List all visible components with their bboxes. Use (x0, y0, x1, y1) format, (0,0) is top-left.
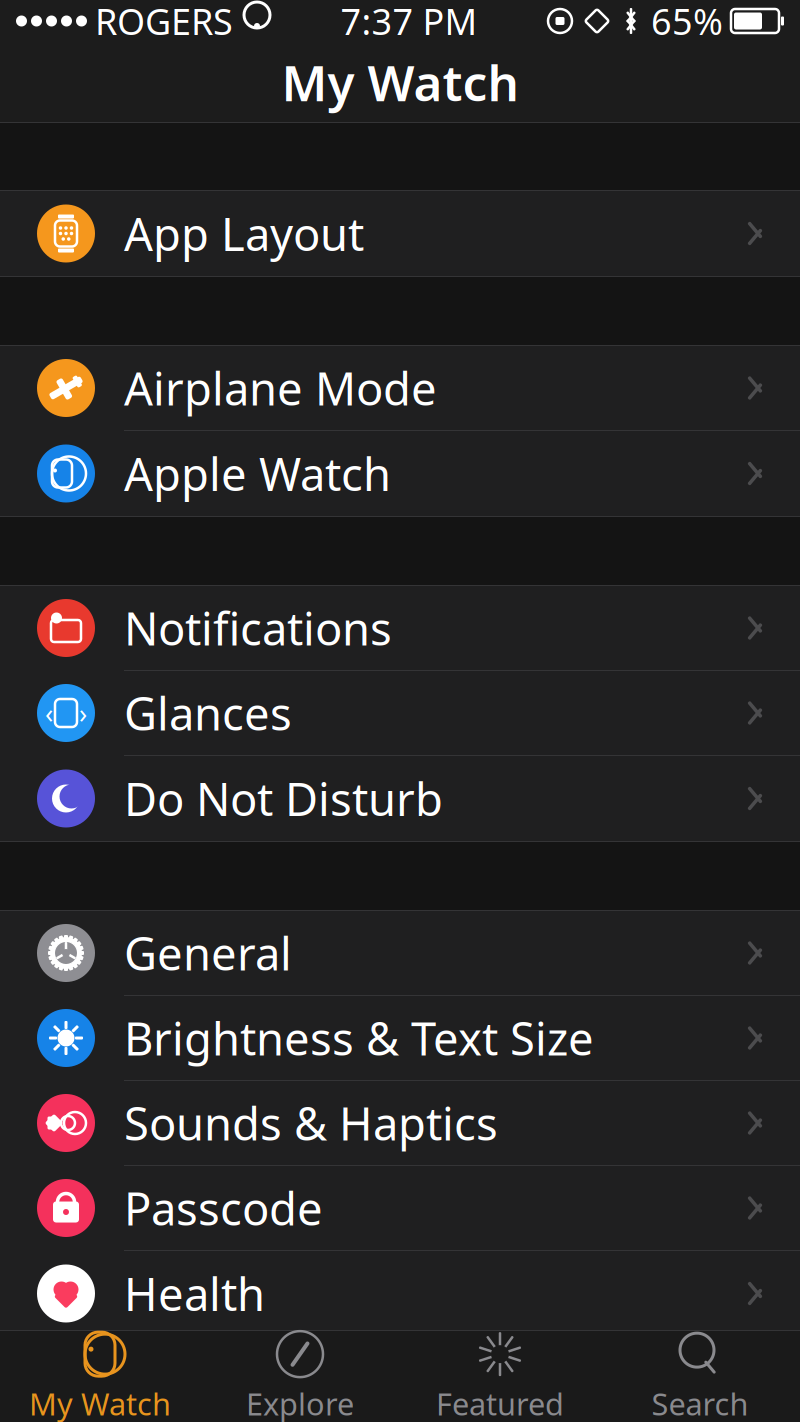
staticText: Passcode (124, 1178, 323, 1238)
staticText: Explore (246, 1383, 354, 1422)
staticText: Notifications (124, 598, 392, 658)
staticText: Featured (436, 1383, 564, 1422)
staticText: ROGERS (95, 0, 233, 45)
staticText: App Layout (124, 203, 364, 264)
button[interactable]: Brightness & Text Size (0, 996, 800, 1081)
button[interactable]: ‹ (0, 671, 800, 756)
staticText: 7:37 PM (340, 0, 477, 45)
button[interactable]: Featured (400, 1331, 600, 1422)
staticText: ‹ (45, 695, 53, 731)
staticText: My Watch (281, 49, 518, 115)
staticText: Health (124, 1263, 265, 1324)
staticText: My Watch (29, 1383, 171, 1422)
staticText: 65% (651, 0, 723, 45)
staticText: Search (651, 1383, 748, 1422)
button[interactable]: Notifications (0, 586, 800, 671)
staticText: Airplane Mode (124, 358, 437, 418)
button[interactable]: Passcode (0, 1166, 800, 1251)
button[interactable]: Search (600, 1331, 800, 1422)
button[interactable]: Health (0, 1251, 800, 1336)
staticText: Brightness & Text Size (124, 1008, 594, 1068)
button[interactable]: Explore (200, 1331, 400, 1422)
staticText: Do Not Disturb (124, 768, 443, 829)
button[interactable]: General (0, 911, 800, 996)
staticText: Apple Watch (124, 443, 391, 504)
button[interactable]: Do Not Disturb (0, 756, 800, 841)
button[interactable]: Apple Watch (0, 431, 800, 516)
staticText: › (79, 695, 87, 731)
staticText: General (124, 923, 292, 983)
button[interactable]: App Layout (0, 191, 800, 276)
button[interactable]: My Watch (0, 1331, 200, 1422)
staticText: Sounds & Haptics (124, 1093, 498, 1153)
button[interactable]: Airplane Mode (0, 346, 800, 431)
button[interactable]: Sounds & Haptics (0, 1081, 800, 1166)
staticText: Glances (124, 683, 292, 743)
